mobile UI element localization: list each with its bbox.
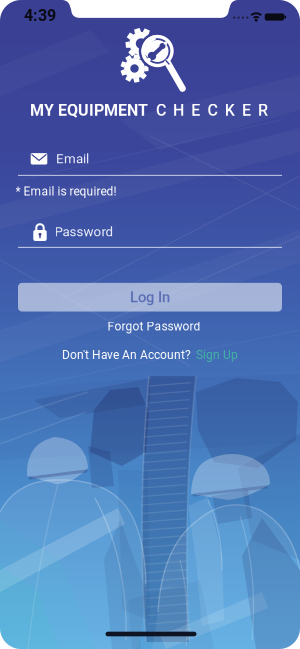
staticText: * Email is required! xyxy=(15,184,116,198)
button[interactable]: Password xyxy=(18,215,282,251)
staticText: E xyxy=(191,101,200,119)
button[interactable]: Email xyxy=(18,147,282,181)
staticText: E xyxy=(242,101,251,119)
staticText: Password xyxy=(54,224,113,239)
staticText: Sign Up xyxy=(196,348,238,362)
staticText: C xyxy=(207,101,217,119)
staticText: MY EQUIPMENT xyxy=(30,101,148,119)
staticText: R xyxy=(258,101,268,119)
staticText: Email xyxy=(56,151,89,166)
staticText: Don't Have An Account? xyxy=(62,348,191,362)
staticText: H xyxy=(173,101,184,119)
button[interactable]: Log In xyxy=(18,283,282,311)
staticText: Forgot Password xyxy=(107,320,200,333)
staticText: 4:39 xyxy=(24,6,56,25)
button[interactable]: Forgot Password xyxy=(107,320,200,333)
staticText: K xyxy=(225,101,235,119)
staticText: Log In xyxy=(130,289,170,306)
staticText: C xyxy=(156,101,166,119)
button[interactable]: Sign Up xyxy=(196,348,238,362)
